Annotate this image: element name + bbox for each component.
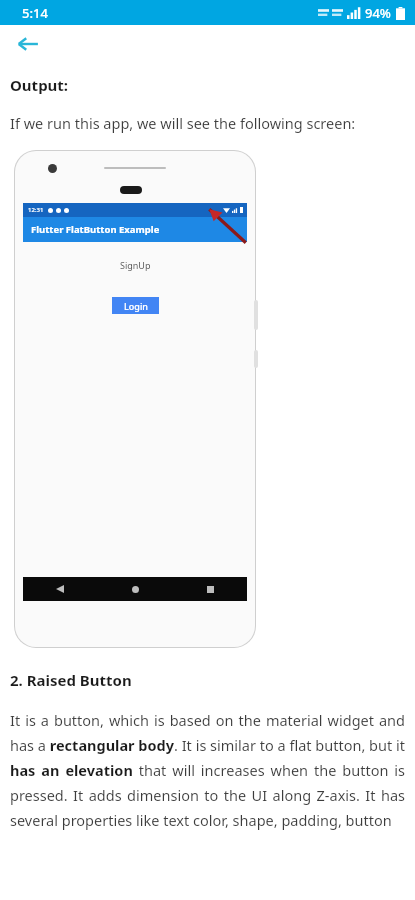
staticText: 12:31 (28, 206, 44, 214)
button[interactable]: Recents (200, 579, 220, 599)
staticText: It is a button, which is based on the ma… (10, 710, 405, 830)
staticText: If we run this app, we will see the foll… (10, 113, 356, 133)
staticText: 5:14 (22, 4, 48, 22)
button[interactable]: Home (125, 579, 145, 599)
staticText: Flutter FlatButton Example (31, 223, 160, 236)
button[interactable]: Login (112, 297, 159, 314)
button[interactable]: Back (8, 25, 48, 63)
staticText: 2. Raised Button (10, 670, 132, 690)
button[interactable]: Back (50, 579, 70, 599)
staticText: 94% (365, 4, 391, 22)
staticText: Login (124, 300, 148, 312)
button[interactable]: SignUp (120, 259, 151, 271)
staticText: Output: (10, 75, 69, 95)
